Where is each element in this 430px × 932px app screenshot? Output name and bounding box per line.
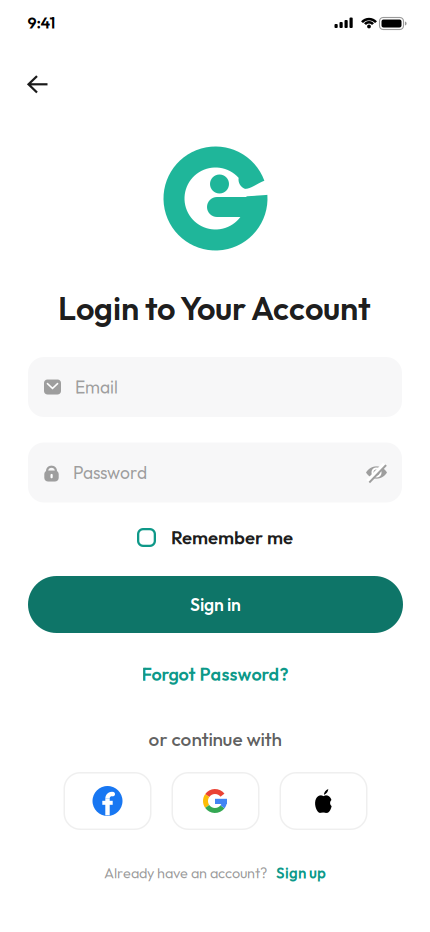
button[interactable]: Continue with Google: [171, 772, 259, 830]
button[interactable]: Continue with Apple: [279, 772, 367, 830]
button[interactable]: Continue with Facebook: [63, 772, 151, 830]
button[interactable]: Forgot Password?: [141, 663, 288, 685]
button[interactable]: Back: [15, 62, 59, 106]
staticText: Already have an account?: [104, 864, 267, 882]
staticText: 9:41: [27, 12, 55, 33]
button[interactable]: Password: [28, 442, 402, 502]
button[interactable]: Remember me: [137, 526, 293, 549]
staticText: Sign up: [276, 863, 326, 882]
staticText: Sign in: [190, 593, 241, 615]
button[interactable]: Sign up: [276, 863, 326, 882]
button[interactable]: Show password: [356, 450, 396, 494]
staticText: Login to Your Account: [58, 287, 371, 328]
staticText: Forgot Password?: [141, 663, 288, 685]
staticText: Remember me: [171, 526, 293, 549]
button[interactable]: Sign in: [28, 576, 403, 633]
staticText: Password: [73, 461, 147, 483]
staticText: or continue with: [148, 727, 281, 751]
button[interactable]: Email: [28, 357, 402, 417]
staticText: Email: [75, 376, 118, 398]
